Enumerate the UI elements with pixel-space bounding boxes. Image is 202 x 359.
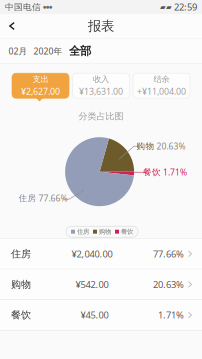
staticText: ¥2,627.00 [21, 85, 60, 97]
staticText: 1.71% [158, 309, 184, 321]
staticText: 支出 [32, 74, 48, 84]
staticText: ▰▰ [160, 3, 172, 11]
button[interactable]: 返回 [2, 14, 22, 38]
staticText: 77.66% [38, 192, 67, 204]
staticText: ¥542.00 [75, 278, 108, 291]
staticText: 02月 [8, 45, 27, 57]
staticText: 结余 [153, 74, 169, 84]
button[interactable]: 住房 [0, 239, 202, 269]
staticText: 购物 [136, 141, 154, 152]
button[interactable]: 结余 [133, 73, 190, 98]
staticText: 住房 [75, 228, 93, 236]
button[interactable]: 购物 [0, 269, 202, 299]
button[interactable]: 全部 [65, 39, 95, 64]
staticText: 住房 [11, 247, 31, 260]
staticText: 购物 [97, 228, 115, 236]
button[interactable]: 详情 [184, 277, 196, 291]
button[interactable]: 支出 [12, 73, 69, 98]
staticText: 餐饮 [11, 309, 31, 321]
staticText: 20.63% [153, 278, 184, 291]
staticText: 报表 [88, 18, 114, 34]
staticText: +¥11,004.00 [137, 85, 186, 97]
staticText: ¥45.00 [80, 309, 108, 321]
button[interactable]: 收入 [72, 73, 129, 98]
staticText: 收入 [93, 74, 109, 84]
staticText: ¥2,040.00 [71, 247, 112, 260]
staticText: 77.66% [153, 247, 184, 260]
button[interactable]: 餐饮 [0, 300, 202, 330]
staticText: ¥13,631.00 [79, 85, 123, 97]
staticText: 2020年 [33, 45, 62, 57]
staticText: 22:59 [172, 1, 197, 13]
staticText: 全部 [69, 44, 91, 58]
staticText: 餐饮 [143, 167, 161, 178]
staticText: 分类占比图 [78, 110, 123, 122]
button[interactable]: 详情 [184, 308, 196, 322]
staticText: 住房 [18, 193, 36, 204]
staticText: 20.63% [156, 140, 185, 152]
button[interactable]: 2020年 [31, 39, 65, 64]
staticText: ⦁⦁⦁ [41, 4, 52, 10]
staticText: 餐饮 [119, 228, 133, 236]
staticText: 购物 [11, 278, 31, 291]
button[interactable]: 02月 [5, 39, 31, 64]
button[interactable]: 详情 [184, 247, 196, 261]
staticText: 1.71% [163, 166, 187, 178]
staticText: 中国电信 [5, 1, 41, 12]
